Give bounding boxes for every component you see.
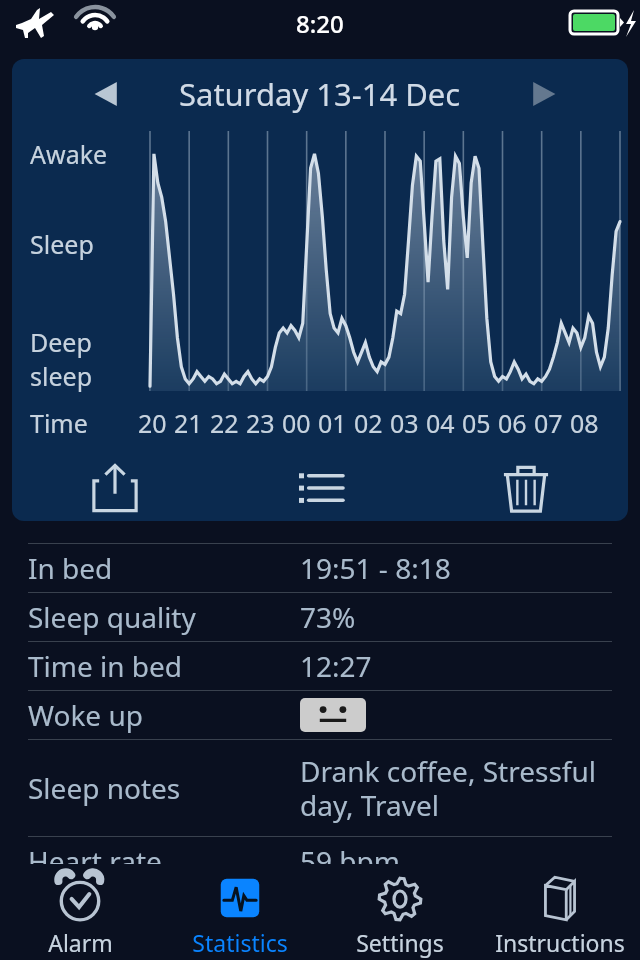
button[interactable]: Sleep quality <box>28 593 612 641</box>
staticText: 22 <box>210 406 239 440</box>
staticText: 73% <box>300 598 612 636</box>
staticText: 8:20 <box>296 7 344 40</box>
staticText: Time <box>30 406 88 440</box>
button[interactable]: Share <box>83 456 147 520</box>
button[interactable]: List view <box>289 456 353 520</box>
staticText: Statistics <box>192 927 288 958</box>
staticText: Heart rate <box>28 842 300 880</box>
button[interactable]: Statistics <box>160 864 320 960</box>
staticText: Saturday 13-14 Dec <box>179 73 461 115</box>
staticText: Time in bed <box>28 647 300 685</box>
button[interactable]: Delete <box>494 456 558 520</box>
staticText: Alarm <box>48 927 113 958</box>
button[interactable]: Next day <box>522 72 566 116</box>
staticText: 23 <box>246 406 275 440</box>
staticText: 21 <box>174 406 203 440</box>
button[interactable]: Time in bed <box>28 642 612 690</box>
staticText: sleep <box>30 359 93 393</box>
staticText: 05 <box>462 406 491 440</box>
staticText: 59 bpm <box>300 842 612 880</box>
button[interactable]: In bed <box>28 544 612 592</box>
staticText: Sleep quality <box>28 598 300 636</box>
button[interactable]: Settings <box>320 864 480 960</box>
staticText: In bed <box>28 549 300 587</box>
staticText: 20 <box>138 406 167 440</box>
button[interactable]: Sleep notes <box>28 740 612 836</box>
staticText: Deep <box>30 325 92 359</box>
button[interactable]: Previous day <box>84 72 128 116</box>
staticText: 07 <box>534 406 563 440</box>
button[interactable]: Instructions <box>480 864 640 960</box>
staticText: Drank coffee, Stressful day, Travel <box>300 752 612 824</box>
button[interactable]: Alarm <box>0 864 160 960</box>
staticText: 12:27 <box>300 647 612 685</box>
staticText: 08 <box>570 406 599 440</box>
staticText: 04 <box>426 406 455 440</box>
staticText: Sleep <box>30 227 94 261</box>
staticText: Awake <box>30 137 108 171</box>
staticText: 02 <box>354 406 383 440</box>
staticText: 03 <box>390 406 419 440</box>
staticText: 19:51 - 8:18 <box>300 549 612 587</box>
staticText: 06 <box>498 406 527 440</box>
staticText: 01 <box>318 406 347 440</box>
button[interactable]: Woke up <box>28 691 612 739</box>
staticText: Settings <box>356 927 444 958</box>
button[interactable]: Heart rate <box>28 837 612 885</box>
staticText: Sleep notes <box>28 769 300 807</box>
staticText: Instructions <box>495 927 625 958</box>
staticText: Woke up <box>28 696 300 734</box>
staticText: 00 <box>282 406 311 440</box>
